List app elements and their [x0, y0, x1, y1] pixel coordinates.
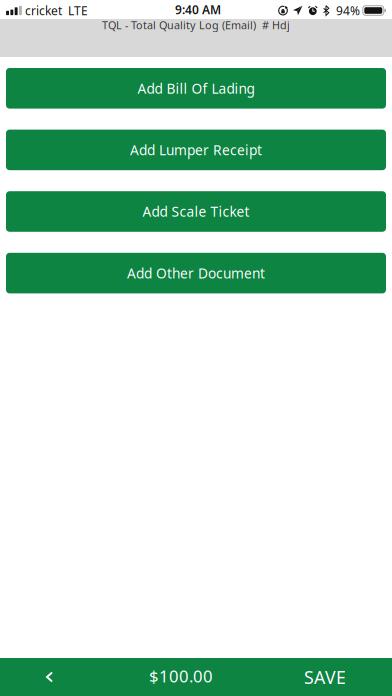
staticText: TQL - Total Quality Log (Email) # Hdj	[102, 18, 290, 32]
button[interactable]: Add Bill Of Lading	[6, 68, 386, 109]
staticText: Add Bill Of Lading	[137, 79, 254, 98]
staticText: 94%	[336, 2, 360, 19]
staticText: LTE	[68, 2, 88, 19]
staticText: SAVE	[304, 665, 346, 689]
staticText: Add Other Document	[127, 264, 265, 282]
staticText: 9:40 AM	[175, 1, 221, 18]
button[interactable]: Back	[0, 658, 99, 696]
staticText: Add Scale Ticket	[142, 202, 249, 221]
staticText: $100.00	[149, 665, 213, 687]
staticText: Add Lumper Receipt	[130, 140, 262, 159]
button[interactable]: Add Scale Ticket	[6, 191, 386, 232]
button[interactable]: SAVE	[258, 658, 392, 696]
button[interactable]: Add Other Document	[6, 253, 386, 293]
button[interactable]: Add Lumper Receipt	[6, 130, 386, 170]
staticText: cricket	[25, 2, 62, 19]
